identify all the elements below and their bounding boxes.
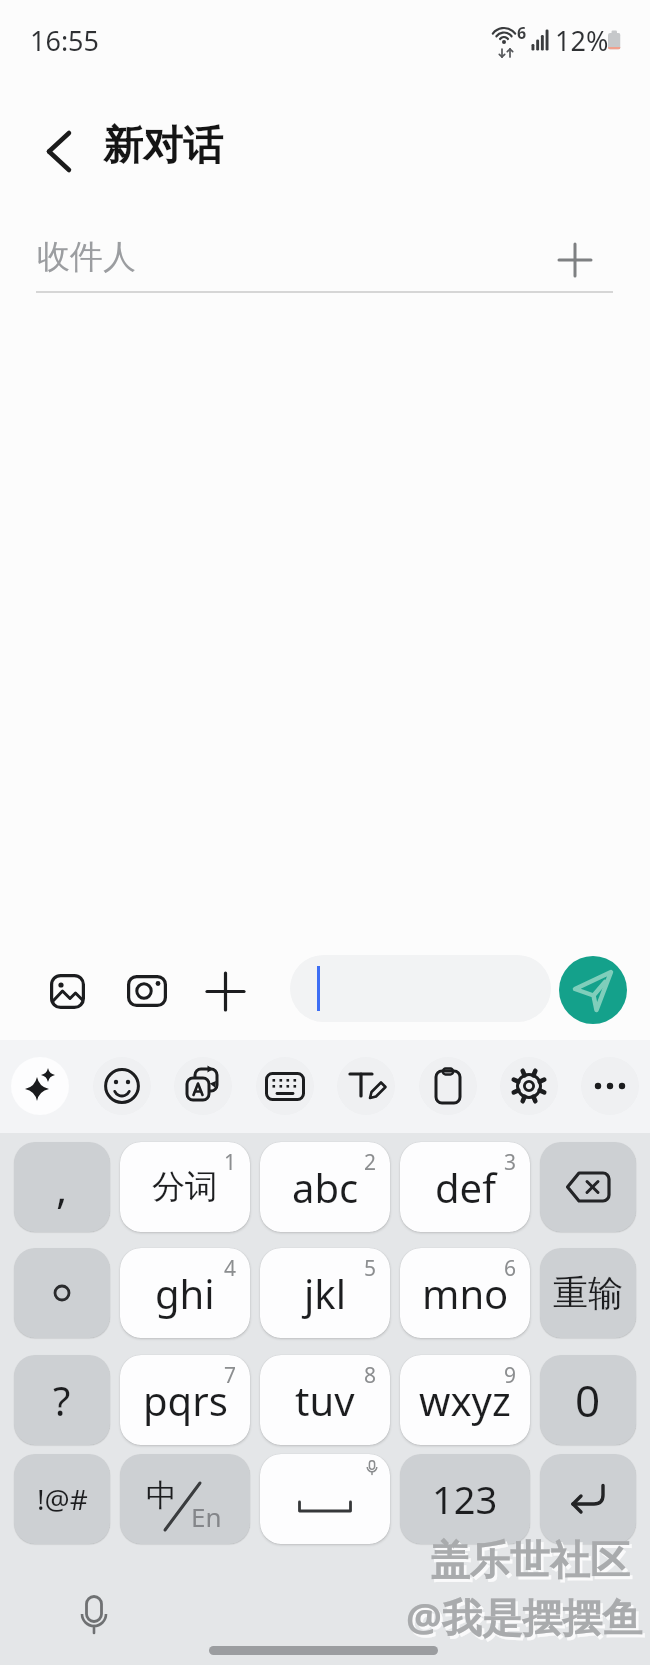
staticText: ghi (155, 1266, 215, 1320)
button[interactable] (28, 118, 90, 184)
staticText: tuv (295, 1373, 355, 1427)
button[interactable] (93, 1057, 151, 1115)
staticText: abc (292, 1160, 359, 1214)
button[interactable]: def (400, 1142, 530, 1232)
button[interactable]: abc (260, 1142, 390, 1232)
button[interactable] (192, 958, 258, 1024)
staticText: 中 (146, 1476, 177, 1515)
button[interactable]: ghi (120, 1248, 250, 1338)
button[interactable] (419, 1057, 477, 1115)
button[interactable]: pqrs (120, 1355, 250, 1445)
button[interactable]: , (14, 1142, 110, 1232)
button[interactable] (14, 1248, 110, 1338)
staticText: 123 (432, 1473, 498, 1525)
button[interactable]: mno (400, 1248, 530, 1338)
staticText: 6 (504, 1254, 517, 1283)
staticText: 8 (364, 1361, 377, 1390)
button[interactable] (64, 1588, 124, 1648)
button[interactable]: 分词 (120, 1142, 250, 1232)
button[interactable]: jkl (260, 1248, 390, 1338)
button[interactable] (581, 1057, 639, 1115)
button[interactable] (34, 958, 100, 1024)
staticText: def (435, 1160, 496, 1214)
staticText: 3 (504, 1148, 517, 1177)
staticText: , (56, 1159, 68, 1216)
staticText: 新对话 (103, 120, 223, 170)
staticText: 2 (364, 1148, 377, 1177)
button[interactable] (544, 230, 606, 290)
button[interactable]: !@# (14, 1454, 110, 1544)
staticText: 4 (224, 1254, 237, 1283)
button[interactable] (559, 956, 627, 1024)
staticText: 9 (504, 1361, 517, 1390)
staticText: 5 (364, 1254, 377, 1283)
button[interactable] (540, 1454, 636, 1544)
button[interactable]: 123 (400, 1454, 530, 1544)
staticText: jkl (304, 1266, 346, 1320)
staticText: 7 (224, 1361, 237, 1390)
staticText: !@# (37, 1480, 88, 1518)
staticText: 收件人 (37, 236, 136, 278)
button[interactable] (256, 1057, 314, 1115)
button[interactable] (290, 955, 551, 1022)
staticText: wxyz (419, 1373, 511, 1427)
staticText: ? (53, 1373, 71, 1427)
button[interactable] (11, 1057, 69, 1115)
staticText: @我是摆摆鱼 (406, 1589, 642, 1644)
staticText: 0 (575, 1370, 601, 1430)
staticText: 12% (555, 22, 609, 59)
staticText: mno (422, 1266, 509, 1320)
staticText: pqrs (143, 1373, 228, 1427)
staticText: 分词 (152, 1166, 218, 1208)
button[interactable] (114, 958, 180, 1024)
staticText: 1 (224, 1148, 237, 1177)
button[interactable]: 中 (120, 1454, 250, 1544)
button[interactable]: 重输 (540, 1248, 636, 1338)
button[interactable] (174, 1057, 232, 1115)
button[interactable]: wxyz (400, 1355, 530, 1445)
button[interactable]: tuv (260, 1355, 390, 1445)
button[interactable] (500, 1057, 558, 1115)
staticText: 重输 (553, 1271, 623, 1315)
button[interactable]: 0 (540, 1355, 636, 1445)
staticText: En (191, 1499, 222, 1534)
button[interactable] (260, 1454, 390, 1544)
staticText: 6 (517, 22, 527, 44)
staticText: 16:55 (30, 22, 100, 59)
button[interactable]: ? (14, 1355, 110, 1445)
button[interactable] (337, 1057, 395, 1115)
button[interactable] (540, 1142, 636, 1232)
staticText: 盖乐世社区 (430, 1535, 630, 1585)
